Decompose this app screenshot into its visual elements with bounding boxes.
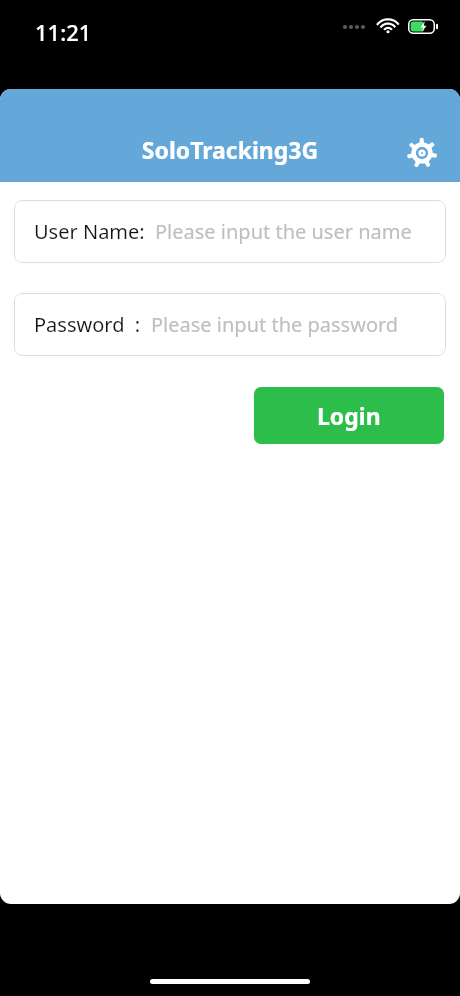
button[interactable]: Password : [14, 293, 446, 356]
staticText: User Name: [34, 218, 145, 245]
staticText: Password : [34, 311, 141, 338]
button[interactable]: Settings [405, 136, 439, 170]
staticText: Please input the user name [155, 218, 412, 245]
staticText: Login [317, 400, 381, 431]
staticText: SoloTracking3G [0, 134, 460, 165]
staticText: 11:21 [35, 17, 92, 47]
button[interactable]: Login [254, 387, 444, 444]
button[interactable]: User Name: [14, 200, 446, 263]
staticText: Please input the password [151, 311, 399, 338]
